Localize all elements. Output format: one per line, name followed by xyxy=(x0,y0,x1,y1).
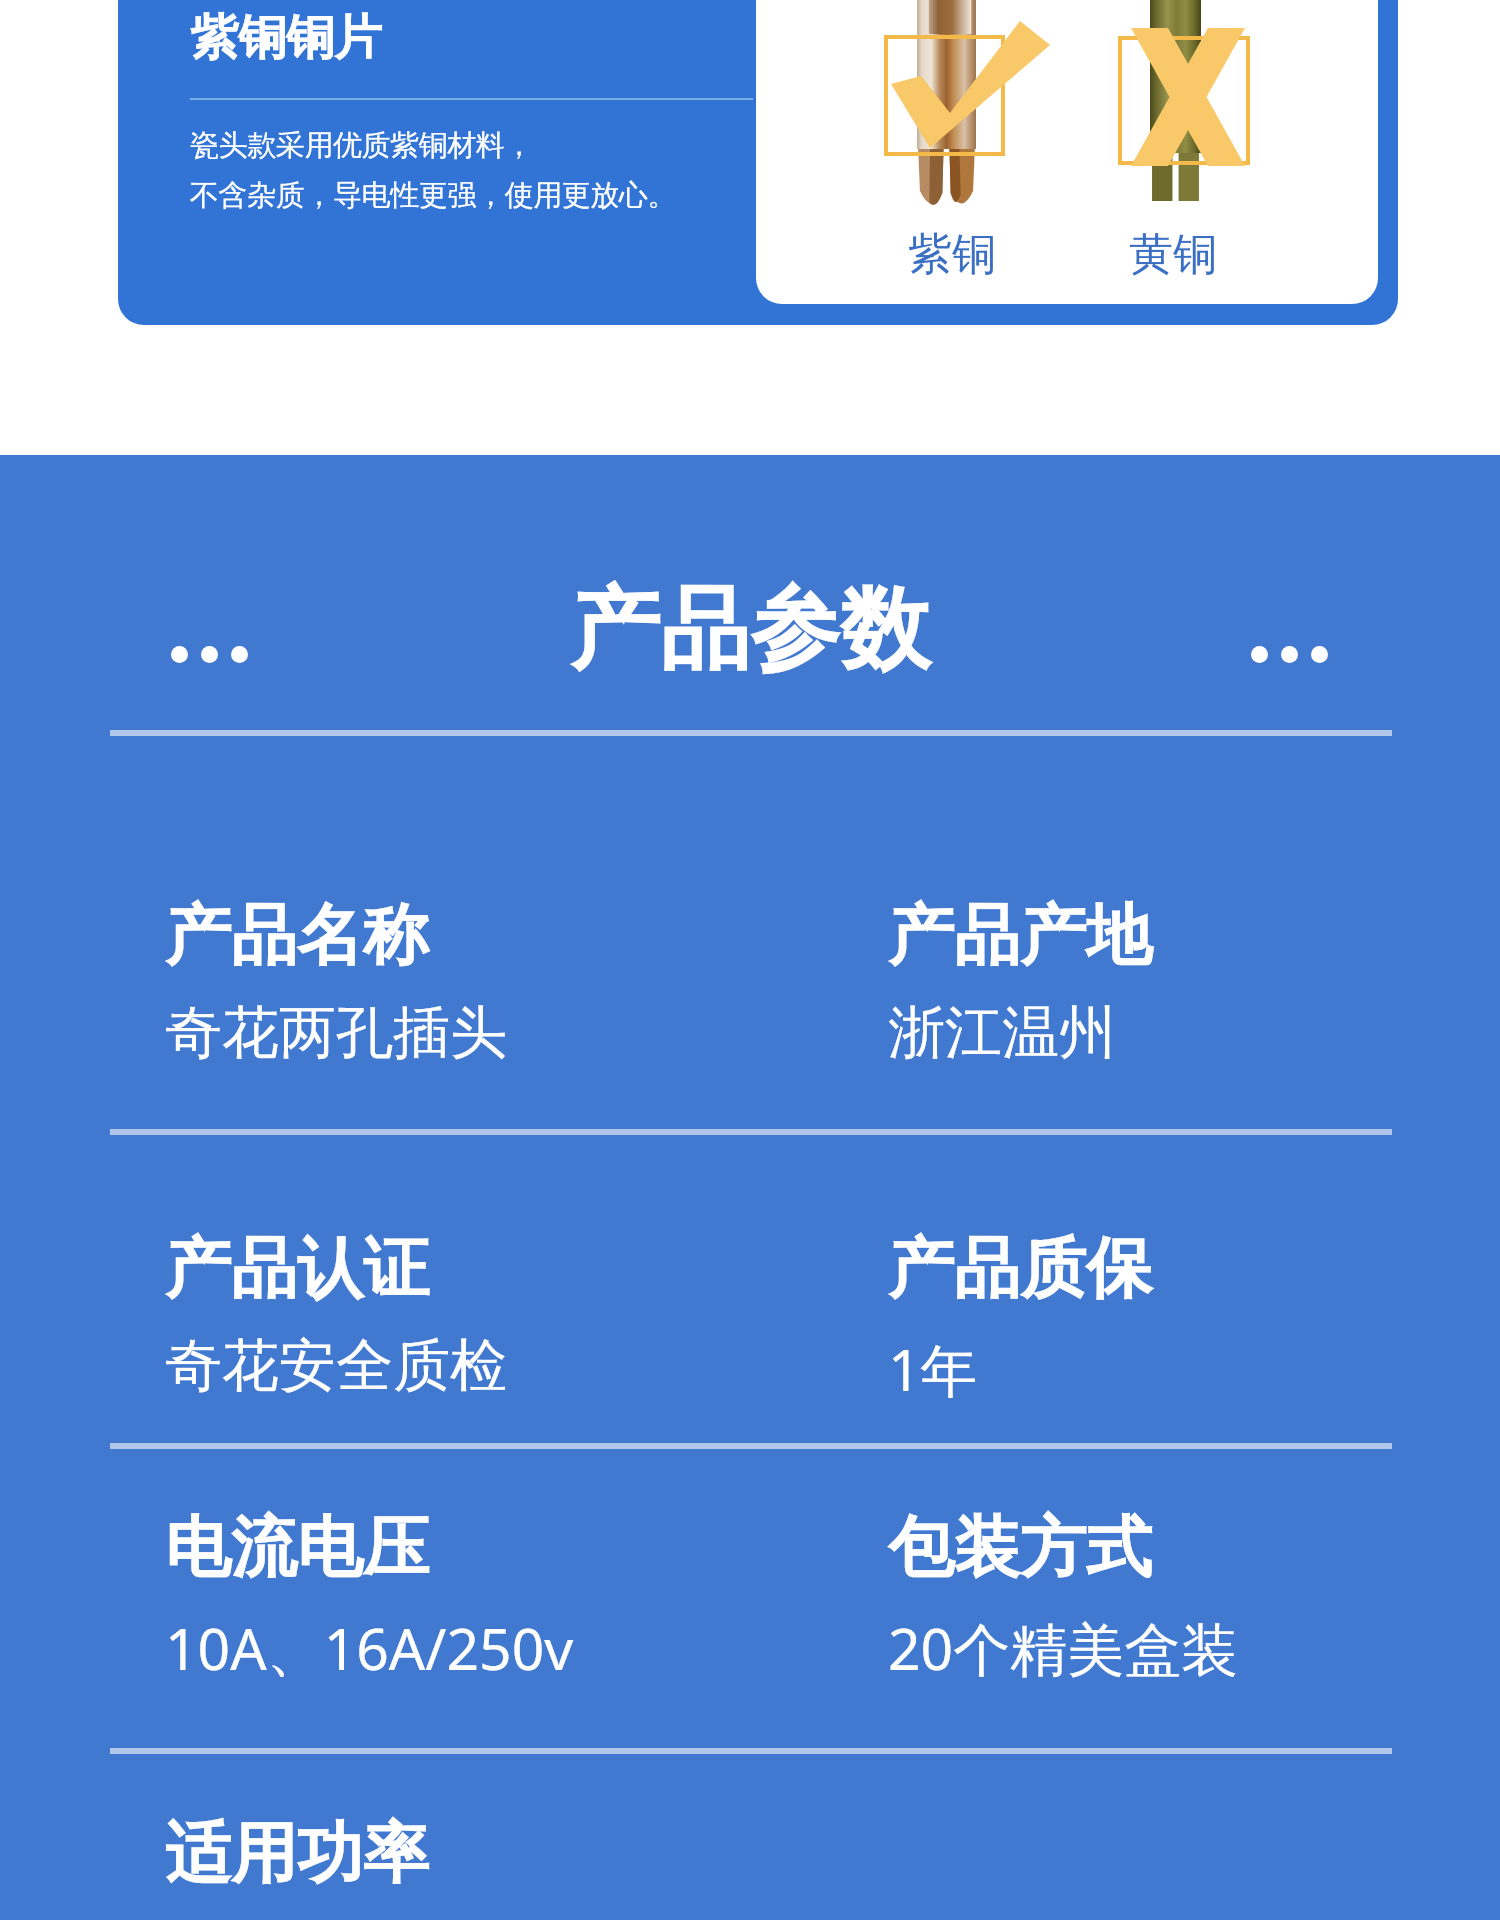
button[interactable]: 更多 xyxy=(171,646,248,663)
staticText: 奇花安全质检 xyxy=(165,1330,507,1402)
staticText: 产品参数 xyxy=(570,573,930,686)
staticText: 瓷头款采用优质紫铜材料， xyxy=(190,127,534,164)
staticText: 包装方式 xyxy=(888,1506,1152,1589)
button[interactable] xyxy=(110,1169,1392,1444)
button[interactable]: 紫铜与黄铜对比 xyxy=(756,0,1378,304)
staticText: 产品质保 xyxy=(888,1227,1152,1310)
button[interactable] xyxy=(110,1780,1392,1920)
staticText: 产品产地 xyxy=(888,894,1152,977)
staticText: 20个精美盒装 xyxy=(888,1609,1239,1687)
staticText: 产品认证 xyxy=(165,1227,429,1310)
button[interactable] xyxy=(110,836,1392,1111)
staticText: 紫铜铜片 xyxy=(190,8,382,68)
button[interactable] xyxy=(118,0,1398,325)
staticText: 黄铜 xyxy=(1129,227,1217,282)
staticText: 电流电压 xyxy=(165,1506,429,1589)
staticText: 奇花两孔插头 xyxy=(165,997,507,1069)
staticText: 10A、16A/250v xyxy=(165,1609,574,1687)
button[interactable]: 更多选项 xyxy=(1251,646,1328,663)
staticText: 紫铜 xyxy=(908,227,996,282)
staticText: 浙江温州 xyxy=(888,997,1116,1069)
staticText: 1年 xyxy=(888,1330,978,1408)
staticText: 产品名称 xyxy=(165,894,429,977)
button[interactable] xyxy=(110,1448,1392,1723)
staticText: 适用功率 xyxy=(165,1812,429,1895)
staticText: 不含杂质，导电性更强，使用更放心。 xyxy=(190,177,677,214)
